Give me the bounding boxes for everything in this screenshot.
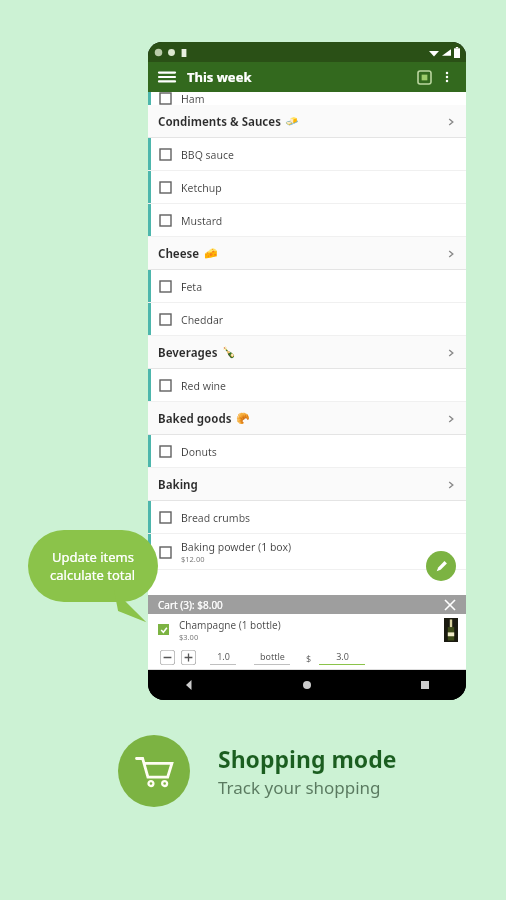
button[interactable]: BBQ sauce: [148, 138, 466, 171]
button[interactable]: Bread crumbs: [148, 501, 466, 534]
button[interactable]: Beverages: [148, 336, 466, 369]
button[interactable]: Cheese: [148, 237, 466, 270]
button[interactable]: Cheddar: [148, 303, 466, 336]
button[interactable]: Close cart: [442, 597, 458, 613]
button[interactable]: Baked goods: [148, 402, 466, 435]
staticText: $: [306, 652, 312, 664]
staticText: 🧈: [285, 115, 299, 128]
button[interactable]: Recent apps: [414, 674, 436, 696]
staticText: This week: [187, 68, 252, 86]
staticText: 1.0: [217, 650, 230, 662]
staticText: Feta: [181, 280, 203, 294]
button[interactable]: Red wine: [148, 369, 466, 402]
staticText: BBQ sauce: [181, 148, 234, 162]
button[interactable]: bottle: [254, 650, 290, 665]
button[interactable]: Ketchup: [148, 171, 466, 204]
staticText: Cheddar: [181, 313, 224, 327]
staticText: Update items: [52, 548, 134, 566]
button[interactable]: Condiments & Sauces: [148, 105, 466, 138]
staticText: Donuts: [181, 445, 217, 459]
staticText: Red wine: [181, 379, 227, 393]
button[interactable]: Increase quantity: [181, 650, 196, 665]
staticText: Baked goods: [158, 411, 232, 427]
staticText: Ketchup: [181, 181, 222, 195]
button[interactable]: Baking powder (1 box): [148, 534, 466, 570]
button[interactable]: 3.0: [319, 650, 365, 665]
staticText: calculate total: [50, 566, 136, 584]
button[interactable]: Feta: [148, 270, 466, 303]
button[interactable]: Shopping mode: [118, 735, 190, 807]
staticText: 🍾: [222, 346, 236, 359]
staticText: $3.00: [179, 632, 199, 642]
button[interactable]: Edit item: [426, 551, 456, 581]
staticText: Cart (3): $8.00: [158, 598, 223, 612]
staticText: 🥐: [236, 412, 250, 425]
staticText: Beverages: [158, 345, 218, 361]
staticText: Ham: [181, 92, 205, 105]
button[interactable]: Home: [296, 674, 318, 696]
staticText: Mustard: [181, 214, 223, 228]
button[interactable]: Cart (3): $8.00: [148, 595, 466, 614]
button[interactable]: Decrease quantity: [160, 650, 175, 665]
staticText: Champagne (1 bottle): [179, 618, 281, 632]
staticText: Track your shopping: [218, 776, 381, 799]
staticText: 🧀: [204, 247, 218, 260]
button[interactable]: Mustard: [148, 204, 466, 237]
button[interactable]: Update items: [28, 530, 158, 602]
staticText: Shopping mode: [218, 743, 397, 774]
button[interactable]: Select list: [412, 65, 436, 89]
staticText: Condiments & Sauces: [158, 114, 281, 130]
staticText: Cheese: [158, 246, 200, 262]
staticText: bottle: [260, 650, 285, 662]
button[interactable]: Back: [178, 674, 200, 696]
button[interactable]: Donuts: [148, 435, 466, 468]
button[interactable]: Baking: [148, 468, 466, 501]
button[interactable]: 1.0: [210, 650, 236, 665]
button[interactable]: Champagne (1 bottle): [148, 614, 466, 645]
staticText: Baking: [158, 477, 198, 493]
staticText: Baking powder (1 box): [181, 540, 292, 554]
button[interactable]: More options: [436, 66, 458, 88]
button[interactable]: Ham: [148, 92, 466, 105]
staticText: $12.00: [181, 554, 205, 564]
button[interactable]: Open navigation menu: [156, 66, 178, 88]
staticText: Bread crumbs: [181, 511, 251, 525]
staticText: 3.0: [336, 650, 349, 662]
